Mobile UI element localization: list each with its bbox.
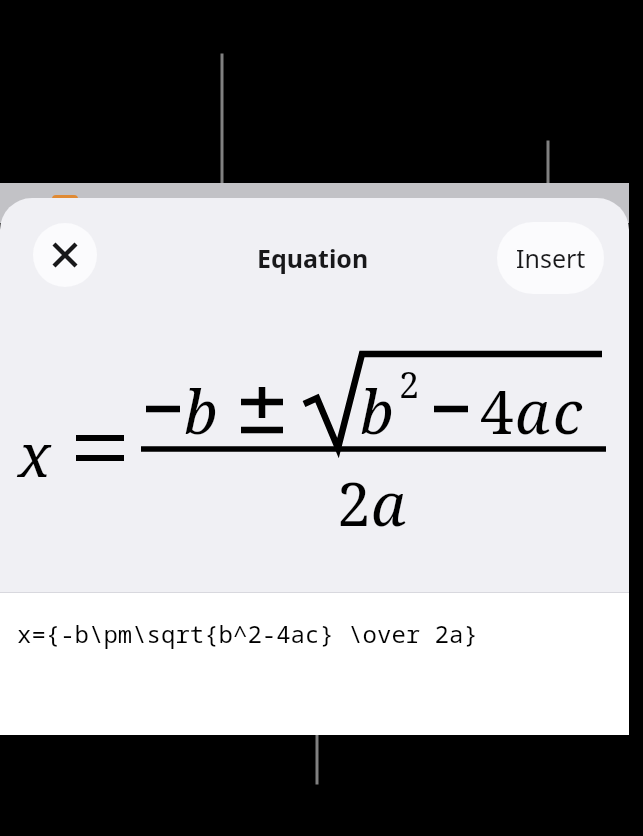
staticText: x={-b\pm\sqrt{b^2-4ac} \over 2a} [17, 617, 478, 650]
staticText: a [371, 462, 406, 544]
staticText: a [515, 370, 550, 452]
staticText: Equation [257, 241, 369, 275]
staticText: b [184, 370, 218, 452]
staticText: Insert [516, 241, 586, 275]
staticText: 2 [337, 462, 371, 544]
staticText: 4 [480, 370, 514, 452]
button[interactable]: Close [33, 223, 97, 287]
staticText: x [18, 413, 51, 495]
button[interactable]: Insert [497, 222, 604, 294]
staticText: b [360, 370, 394, 452]
staticText: 2 [399, 360, 420, 409]
staticText: c [553, 370, 583, 452]
